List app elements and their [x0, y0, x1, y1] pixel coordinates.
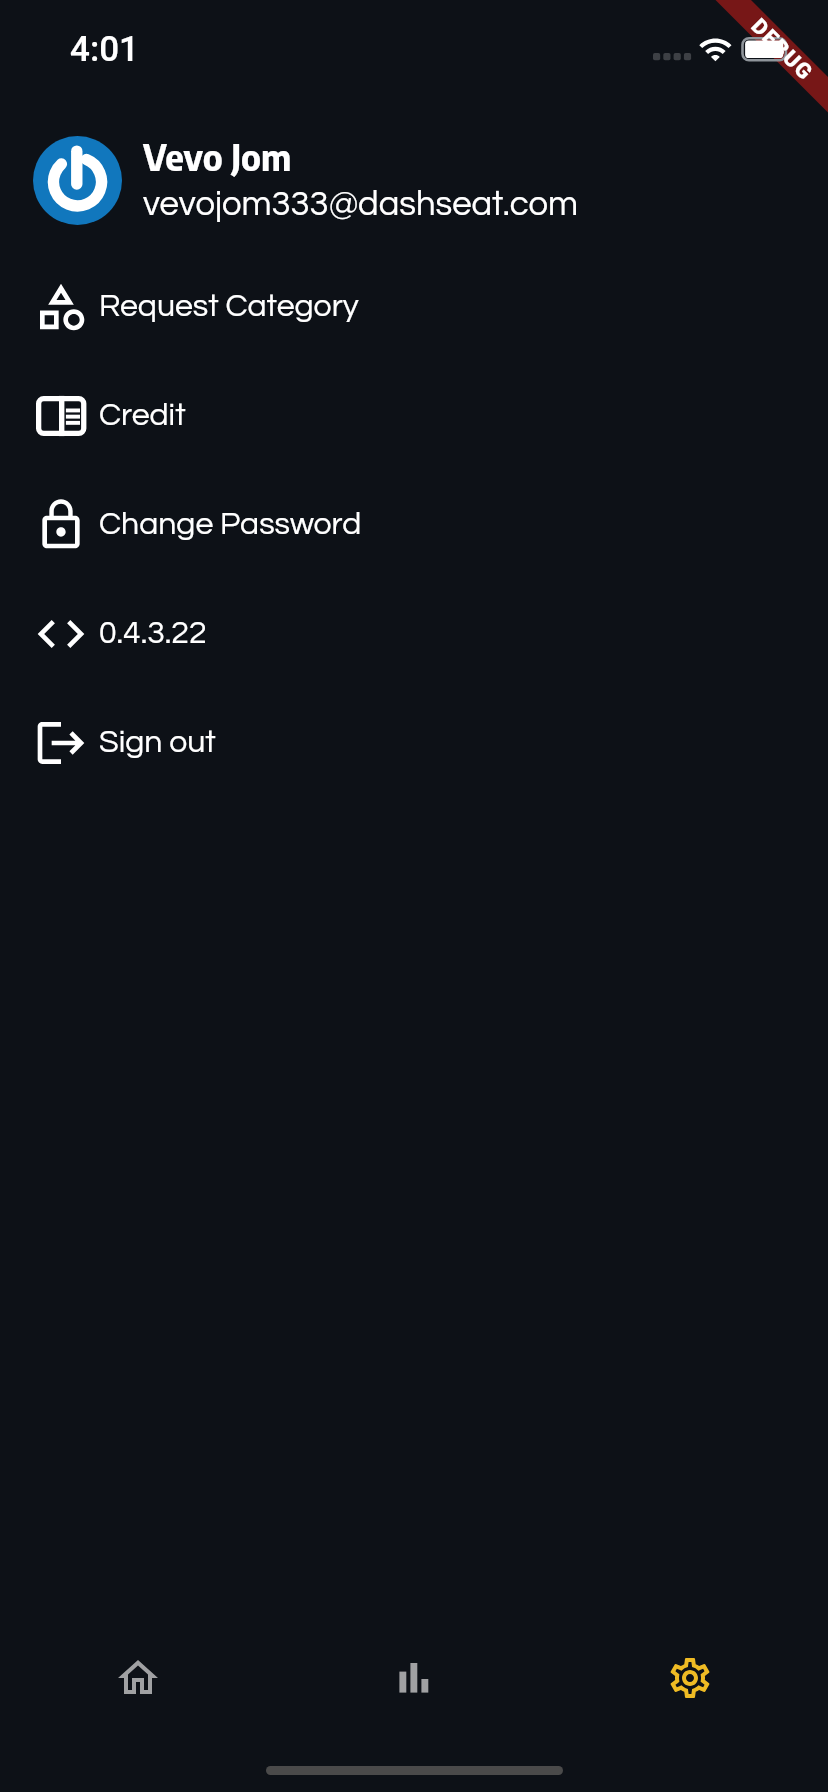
button[interactable]: Change Password — [0, 470, 828, 579]
button[interactable]: Home — [0, 1623, 276, 1733]
staticText: Change Password — [99, 508, 362, 541]
button[interactable]: Sign out — [0, 688, 828, 797]
button[interactable]: 0.4.3.22 — [0, 579, 828, 688]
button[interactable]: Settings — [552, 1623, 828, 1733]
staticText: Vevo Jom — [143, 134, 292, 179]
staticText: DEBUG — [746, 13, 818, 85]
button[interactable]: Statistics — [276, 1623, 552, 1733]
staticText: Request Category — [99, 290, 359, 323]
staticText: 4:01 — [70, 29, 139, 70]
staticText: Credit — [99, 399, 186, 432]
staticText: 0.4.3.22 — [99, 617, 207, 650]
button[interactable]: Request Category — [0, 252, 828, 361]
button[interactable]: Credit — [0, 361, 828, 470]
staticText: vevojom333@dashseat.com — [143, 187, 579, 223]
button[interactable]: Vevo Jom — [0, 120, 828, 240]
staticText: Sign out — [99, 726, 216, 759]
